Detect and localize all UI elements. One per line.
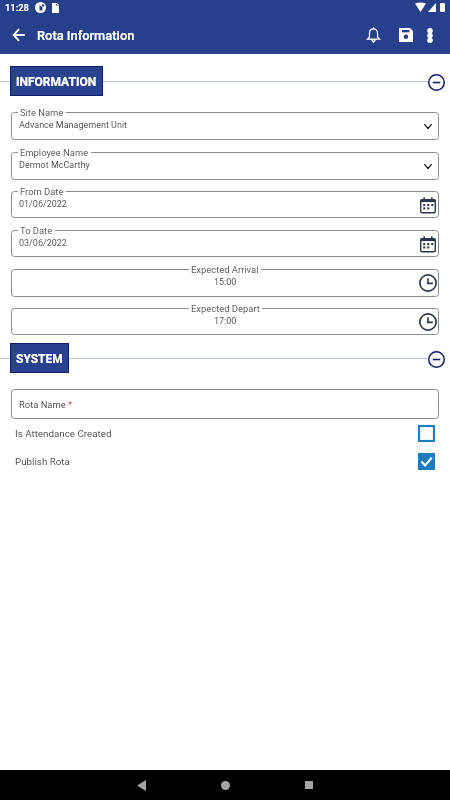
button[interactable]: Open Site Name [417, 115, 439, 137]
button[interactable]: Notifications [358, 17, 388, 53]
button[interactable]: Save [391, 17, 421, 53]
staticText: Publish Rota [15, 456, 70, 467]
button[interactable]: Back [6, 17, 32, 53]
button[interactable]: Pick time [417, 311, 439, 333]
button[interactable]: Publish Rota [15, 452, 435, 470]
staticText: INFORMATION [16, 75, 97, 89]
button[interactable]: Back [128, 772, 154, 798]
staticText: Dermot McCarthy [19, 160, 90, 171]
staticText: 01/06/2022 [19, 199, 67, 210]
staticText: Rota Name [19, 399, 66, 410]
staticText: 03/06/2022 [19, 238, 67, 249]
staticText: Employee Name [20, 147, 89, 158]
staticText: Expected Arrival [191, 264, 259, 275]
button[interactable]: Pick time [417, 272, 439, 294]
button[interactable]: Is Attendance Created [15, 424, 435, 442]
button[interactable]: INFORMATION [11, 67, 102, 95]
staticText: Is Attendance Created [15, 428, 112, 439]
staticText: Expected Depart [191, 303, 260, 314]
button[interactable]: Collapse section [426, 349, 446, 369]
staticText: 15:00 [214, 277, 237, 288]
button[interactable]: SYSTEM [11, 344, 68, 372]
button[interactable]: Home [212, 772, 238, 798]
staticText: * [68, 399, 73, 410]
staticText: Rota Information [37, 28, 135, 43]
button[interactable]: Recent apps [296, 772, 322, 798]
button[interactable]: Open Employee Name [417, 155, 439, 177]
button[interactable]: Collapse section [426, 72, 446, 92]
button[interactable]: More options [417, 17, 442, 53]
staticText: 17:00 [214, 316, 237, 327]
staticText: 11:28 [5, 2, 29, 13]
staticText: To Date [20, 225, 53, 236]
staticText: Site Name [20, 107, 64, 118]
staticText: From Date [20, 186, 64, 197]
staticText: SYSTEM [16, 352, 63, 366]
button[interactable]: Pick date [417, 233, 439, 255]
staticText: Advance Management Unit [19, 120, 128, 131]
button[interactable]: Pick date [417, 194, 439, 216]
